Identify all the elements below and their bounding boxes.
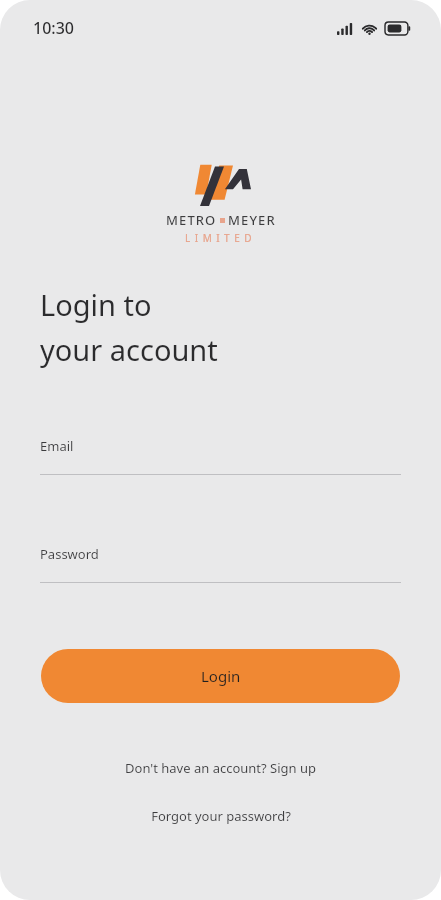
button[interactable]: Email (40, 437, 401, 475)
staticText: METRO (166, 211, 217, 229)
button[interactable]: Forgot your password? (145, 803, 297, 829)
staticText: Forgot your password? (151, 807, 291, 825)
button[interactable]: Don't have an account? Sign up (119, 755, 322, 781)
staticText: MEYER (228, 211, 276, 229)
staticText: Password (40, 545, 99, 563)
staticText: Login (201, 666, 241, 686)
staticText: LIMITED (185, 231, 257, 245)
button[interactable]: Password (40, 545, 401, 583)
staticText: 10:30 (33, 17, 74, 39)
staticText: Don't have an account? Sign up (125, 759, 316, 777)
staticText: Email (40, 437, 74, 455)
staticText: Login to (40, 285, 152, 324)
staticText: your account (40, 330, 218, 369)
button[interactable]: Login (41, 649, 400, 703)
